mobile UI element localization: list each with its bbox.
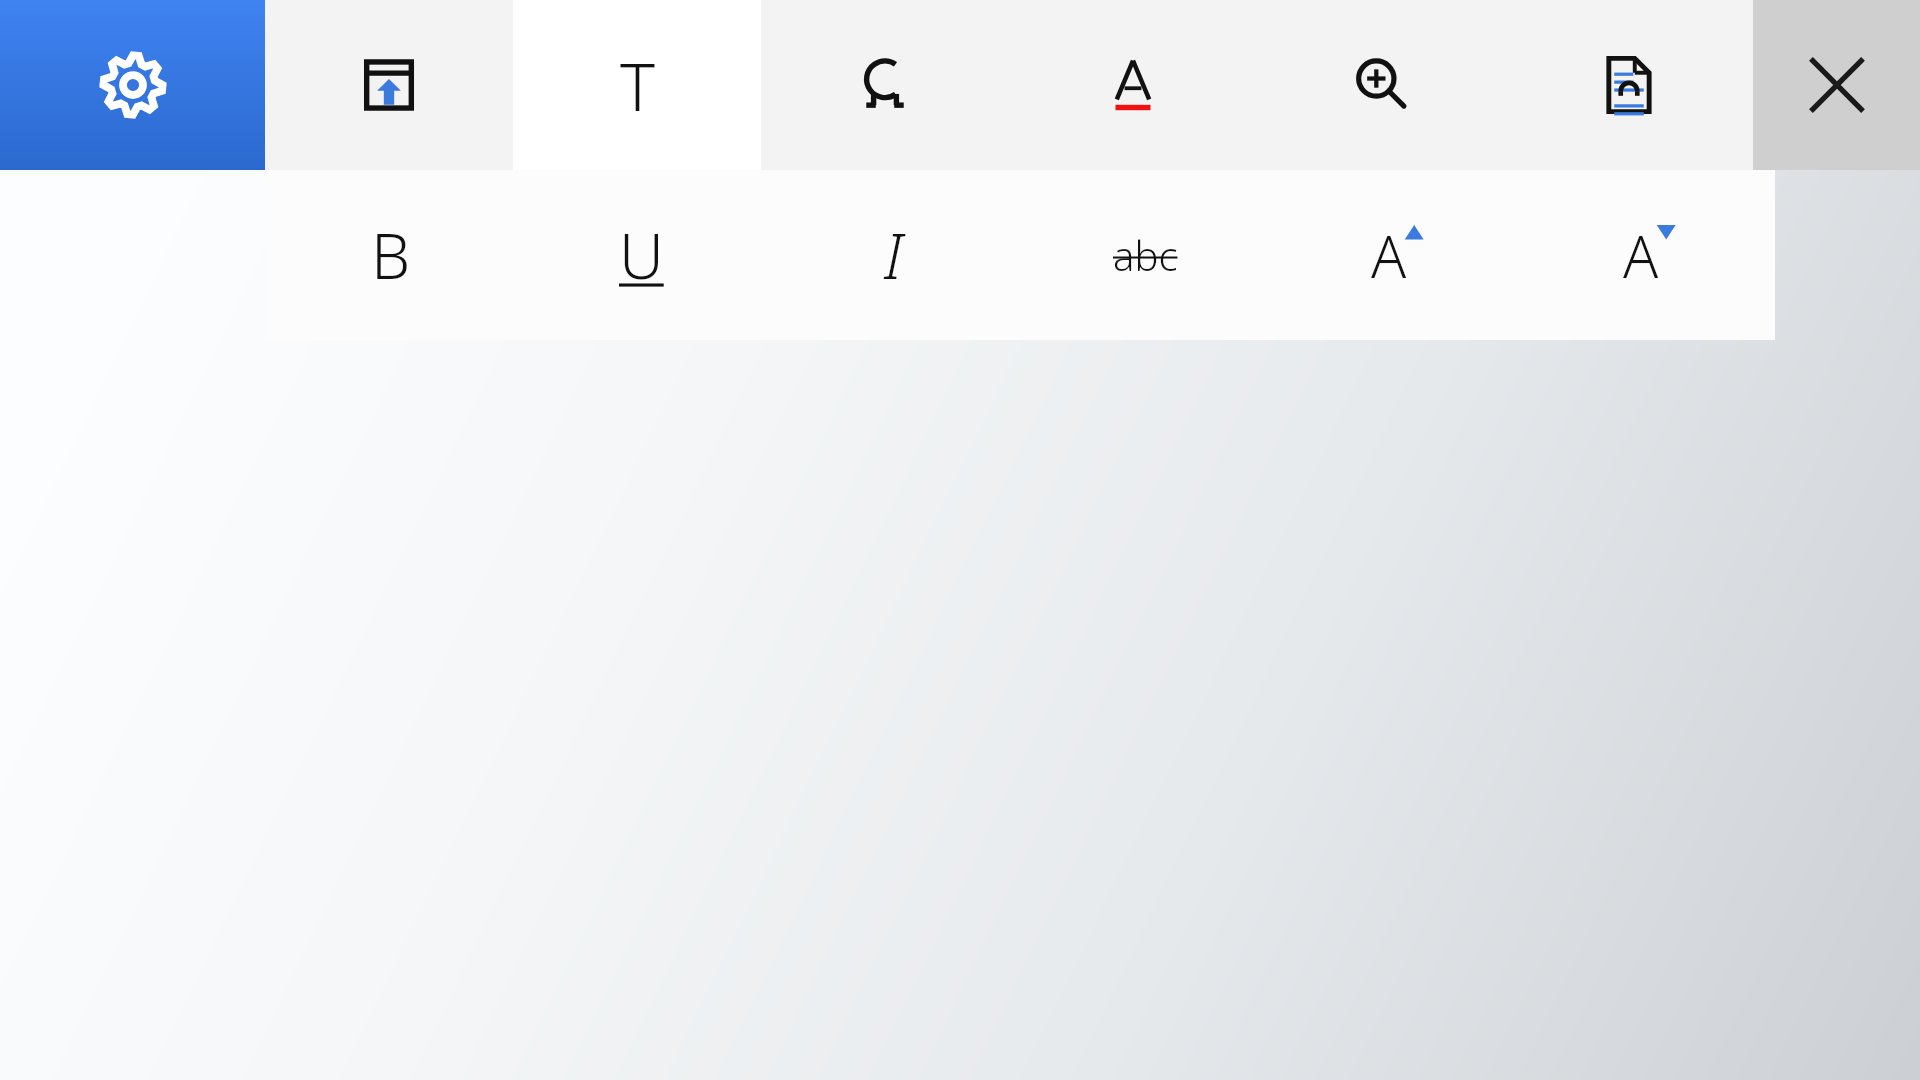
- button[interactable]: Increase font size: [1271, 170, 1523, 340]
- button[interactable]: Underline: [516, 170, 767, 340]
- staticText: B: [371, 213, 411, 297]
- button[interactable]: Insert above: [265, 0, 513, 170]
- button[interactable]: Bold: [265, 170, 516, 340]
- button[interactable]: Strikethrough: [1019, 170, 1271, 340]
- staticText: U: [619, 213, 664, 297]
- button[interactable]: Close: [1753, 0, 1920, 170]
- button[interactable]: Zoom in: [1257, 0, 1505, 170]
- button[interactable]: Font color: [1009, 0, 1257, 170]
- button[interactable]: Insert symbol: [761, 0, 1009, 170]
- staticText: T: [620, 40, 655, 130]
- staticText: abc: [1113, 228, 1178, 282]
- button[interactable]: Italic: [767, 170, 1019, 340]
- staticText: A: [1371, 216, 1407, 295]
- button[interactable]: Document properties: [1505, 0, 1753, 170]
- staticText: A: [1623, 216, 1659, 295]
- staticText: I: [884, 213, 903, 297]
- button[interactable]: Decrease font size: [1523, 170, 1775, 340]
- button[interactable]: Text formatting: [513, 0, 761, 170]
- button[interactable]: Settings: [0, 0, 265, 170]
